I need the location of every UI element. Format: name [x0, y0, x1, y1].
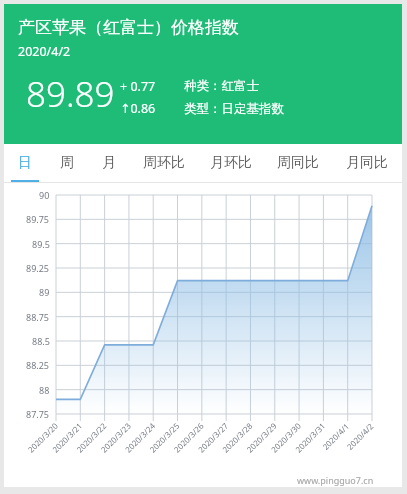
staticText: 周环比: [143, 154, 185, 172]
staticText: + 0.77: [120, 78, 156, 95]
staticText: 种类：红富士: [184, 78, 259, 94]
button[interactable]: 周同比: [264, 144, 331, 182]
staticText: 89.89: [26, 70, 115, 118]
staticText: 产区苹果（红富士）价格指数: [18, 17, 239, 38]
button[interactable]: 月同比: [331, 144, 402, 182]
staticText: 日: [18, 154, 32, 172]
button[interactable]: 日: [4, 144, 46, 182]
staticText: 周同比: [277, 154, 319, 172]
button[interactable]: 周环比: [130, 144, 197, 182]
staticText: 月环比: [210, 154, 252, 172]
staticText: 周: [60, 154, 74, 172]
button[interactable]: 月环比: [197, 144, 264, 182]
staticText: www.pingguo7.cn: [297, 474, 374, 486]
staticText: ↑0.86: [120, 100, 156, 117]
staticText: 2020/4/2: [18, 43, 71, 60]
button[interactable]: 周: [46, 144, 88, 182]
button[interactable]: 月: [88, 144, 130, 182]
staticText: 月同比: [346, 154, 388, 172]
staticText: 类型：日定基指数: [184, 101, 284, 117]
staticText: 月: [102, 154, 116, 172]
